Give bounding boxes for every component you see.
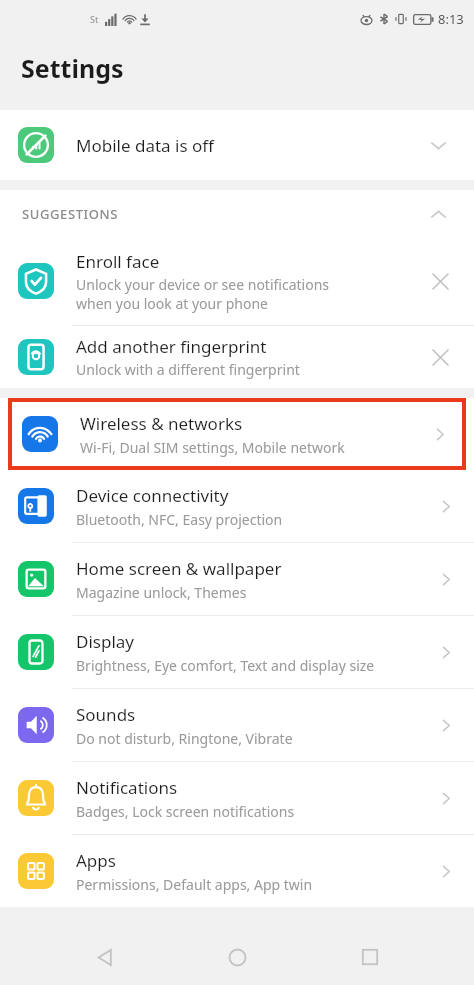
button[interactable]: Enroll face	[0, 237, 474, 325]
button[interactable]: Home	[209, 929, 265, 985]
button[interactable]: Wireless & networks	[12, 402, 462, 466]
button[interactable]: SUGGESTIONS	[0, 190, 474, 237]
button[interactable]: Collapse suggestions	[416, 192, 460, 236]
staticText: Bluetooth, NFC, Easy projection	[76, 510, 283, 529]
button[interactable]: Apps	[0, 835, 474, 907]
staticText: Unlock with a different fingerprint	[76, 360, 300, 379]
staticText: Sounds	[76, 703, 136, 726]
button[interactable]: Recent apps	[342, 929, 398, 985]
button[interactable]: Back	[77, 929, 133, 985]
button[interactable]: Add another fingerprint	[0, 326, 474, 388]
staticText: Add another fingerprint	[76, 335, 267, 358]
button[interactable]: Dismiss Add another fingerprint	[418, 335, 462, 379]
staticText: 8:13	[438, 10, 464, 28]
staticText: Wireless & networks	[80, 412, 243, 435]
staticText: Display	[76, 630, 134, 653]
button[interactable]: Notifications	[0, 762, 474, 834]
button[interactable]: Dismiss Enroll face	[418, 259, 462, 303]
staticText: Device connectivity	[76, 484, 229, 507]
button[interactable]: Home screen & wallpaper	[0, 543, 474, 615]
button[interactable]: Sounds	[0, 689, 474, 761]
staticText: Wi-Fi, Dual SIM settings, Mobile network	[80, 438, 345, 457]
staticText: Unlock your device or see notifications	[76, 275, 330, 294]
button[interactable]: Mobile data is off	[0, 110, 474, 180]
staticText: when you look at your phone	[76, 294, 268, 313]
staticText: St	[90, 13, 99, 25]
staticText: Apps	[76, 849, 116, 872]
staticText: Home screen & wallpaper	[76, 557, 282, 580]
staticText: Brightness, Eye comfort, Text and displa…	[76, 656, 375, 675]
staticText: Permissions, Default apps, App twin	[76, 875, 313, 894]
staticText: Settings	[21, 51, 124, 85]
button[interactable]: Display	[0, 616, 474, 688]
staticText: Do not disturb, Ringtone, Vibrate	[76, 729, 293, 748]
staticText: Mobile data is off	[76, 134, 214, 157]
staticText: SUGGESTIONS	[22, 205, 118, 223]
staticText: Badges, Lock screen notifications	[76, 802, 295, 821]
staticText: Notifications	[76, 776, 178, 799]
staticText: Enroll face	[76, 250, 160, 273]
staticText: Magazine unlock, Themes	[76, 583, 247, 602]
button[interactable]: Device connectivity	[0, 470, 474, 542]
button[interactable]: Expand mobile data	[416, 123, 460, 167]
